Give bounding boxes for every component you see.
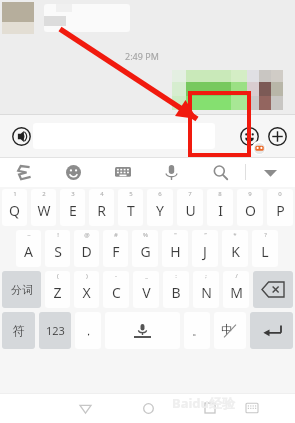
button[interactable]: * <box>222 230 248 267</box>
button[interactable]: ? <box>252 230 278 267</box>
button[interactable]: Voice input <box>6 121 36 151</box>
staticText: L <box>261 242 269 261</box>
staticText: 符 <box>13 323 25 338</box>
staticText: _ <box>145 272 148 280</box>
button[interactable]: ; <box>193 271 219 308</box>
staticText: @ <box>84 231 90 239</box>
staticText: 分词 <box>11 283 33 297</box>
staticText: I <box>218 201 223 220</box>
button[interactable]: % <box>132 230 158 267</box>
staticText: - <box>115 272 117 280</box>
staticText: " <box>174 231 177 239</box>
staticText: 123 <box>46 323 65 338</box>
button[interactable]: @ <box>74 230 99 267</box>
button[interactable]: Back <box>72 395 98 421</box>
button[interactable]: Emoticons <box>49 157 98 187</box>
button[interactable]: 8 <box>207 189 233 226</box>
staticText: Q <box>9 201 20 220</box>
staticText: ) <box>86 272 88 280</box>
staticText: M <box>230 283 243 302</box>
button[interactable]: 分词 <box>2 271 41 308</box>
staticText: X <box>82 283 91 302</box>
button[interactable]: 4 <box>89 189 114 226</box>
button[interactable]: More <box>263 122 291 150</box>
button[interactable]: ” <box>192 230 218 267</box>
button[interactable]: Sogou input <box>0 157 49 187</box>
button[interactable]: / <box>223 271 249 308</box>
staticText: C <box>112 283 121 302</box>
button[interactable]: 中 <box>214 312 246 349</box>
staticText: : <box>175 272 177 280</box>
button[interactable]: Backspace <box>253 271 293 308</box>
button[interactable]: 0 <box>267 189 293 226</box>
staticText: E <box>69 201 77 220</box>
button[interactable]: ( <box>45 271 70 308</box>
staticText: ~ <box>27 231 31 239</box>
staticText: ; <box>205 272 207 280</box>
button[interactable]: Switch keyboard <box>239 395 265 421</box>
staticText: J <box>203 242 207 261</box>
button[interactable]: : <box>163 271 189 308</box>
staticText: # <box>114 231 118 239</box>
staticText: ( <box>57 272 59 280</box>
button[interactable] <box>33 123 215 149</box>
staticText: 2 <box>42 190 46 198</box>
button[interactable]: Home <box>135 395 161 421</box>
button[interactable]: Emoji <box>235 122 263 150</box>
button[interactable]: # <box>103 230 128 267</box>
staticText: % <box>143 231 148 239</box>
button[interactable]: Voice <box>147 157 196 187</box>
button[interactable]: 123 <box>39 312 71 349</box>
staticText: 6 <box>158 190 162 198</box>
staticText: U <box>185 201 196 220</box>
staticText: 4 <box>100 190 104 198</box>
button[interactable]: 。 <box>184 312 210 349</box>
button[interactable]: 符 <box>2 312 35 349</box>
staticText: H <box>170 242 181 261</box>
staticText: ， <box>83 324 94 338</box>
button[interactable]: 3 <box>60 189 85 226</box>
button[interactable]: ! <box>45 230 70 267</box>
button[interactable]: - <box>103 271 129 308</box>
button[interactable]: ~ <box>16 230 41 267</box>
staticText: B <box>171 283 181 302</box>
button[interactable]: ) <box>74 271 99 308</box>
staticText: D <box>81 242 92 261</box>
button[interactable]: " <box>162 230 188 267</box>
button[interactable]: 1 <box>2 189 27 226</box>
button[interactable]: 7 <box>177 189 203 226</box>
staticText: ? <box>264 231 267 239</box>
button[interactable]: _ <box>133 271 159 308</box>
staticText: 3 <box>71 190 75 198</box>
button[interactable]: 9 <box>237 189 263 226</box>
staticText: N <box>201 283 212 302</box>
staticText: V <box>142 283 151 302</box>
button[interactable]: 5 <box>118 189 143 226</box>
staticText: K <box>231 242 240 261</box>
staticText: Baidu经验 <box>172 394 235 412</box>
staticText: * <box>233 231 237 239</box>
button[interactable]: Recent apps <box>197 395 223 421</box>
staticText: 5 <box>129 190 133 198</box>
staticText: 。 <box>192 324 203 338</box>
staticText: 1 <box>13 190 17 198</box>
staticText: 2:49 PM <box>125 50 159 62</box>
button[interactable]: 6 <box>147 189 173 226</box>
button[interactable]: 2 <box>31 189 56 226</box>
button[interactable]: Collapse keyboard <box>246 157 295 187</box>
staticText: F <box>112 242 120 261</box>
button[interactable]: ， <box>75 312 101 349</box>
staticText: ! <box>57 231 59 239</box>
staticText: ” <box>204 231 207 239</box>
staticText: W <box>37 201 51 220</box>
staticText: S <box>54 242 62 261</box>
staticText: R <box>97 201 106 220</box>
button[interactable]: Space <box>105 312 180 349</box>
staticText: G <box>140 242 151 261</box>
button[interactable]: Enter <box>250 312 293 349</box>
button[interactable]: Search <box>196 157 245 187</box>
button[interactable]: Keyboard settings <box>98 157 147 187</box>
staticText: P <box>276 201 285 220</box>
staticText: / <box>235 272 238 280</box>
staticText: Z <box>53 283 62 302</box>
